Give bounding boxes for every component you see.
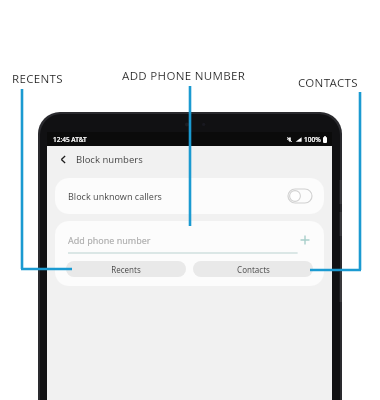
staticText: Block numbers: [76, 153, 143, 166]
staticText: RECENTS: [12, 71, 63, 87]
button[interactable]: Contacts: [193, 261, 313, 277]
button[interactable]: Add: [299, 234, 311, 246]
staticText: CONTACTS: [298, 75, 358, 91]
staticText: Contacts: [237, 264, 270, 275]
button[interactable]: Back: [56, 152, 70, 166]
staticText: 100%: [304, 135, 321, 144]
button[interactable]: Block unknown callers: [55, 178, 324, 214]
staticText: Block unknown callers: [68, 190, 162, 202]
staticText: Recents: [111, 264, 141, 275]
button[interactable]: Block unknown callers toggle: [288, 189, 312, 203]
staticText: ADD PHONE NUMBER: [122, 68, 246, 84]
button[interactable]: Recents: [66, 261, 186, 277]
staticText: 12:45 AT&T: [53, 135, 87, 144]
staticText: Add phone number: [68, 234, 151, 246]
button[interactable]: Add phone number: [68, 228, 311, 252]
